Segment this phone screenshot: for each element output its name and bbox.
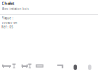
button[interactable]: Pouffe	[88, 62, 91, 70]
staticText: Réf : 05	[1, 25, 13, 29]
staticText: 200x40 cm	[1, 21, 16, 24]
button[interactable]: Sofa	[22, 62, 28, 70]
button[interactable]: Table lamp	[28, 62, 31, 70]
button[interactable]: Floor lamp	[12, 62, 16, 70]
staticText: Plaque :	[1, 16, 13, 20]
button[interactable]: Shelving unit	[36, 62, 43, 70]
staticText: Micro imitation bois	[1, 7, 28, 11]
staticText: Chalet	[1, 1, 14, 6]
button[interactable]: Console table	[57, 62, 63, 70]
button[interactable]: Daybed	[2, 62, 11, 70]
button[interactable]: Vase	[74, 62, 77, 70]
